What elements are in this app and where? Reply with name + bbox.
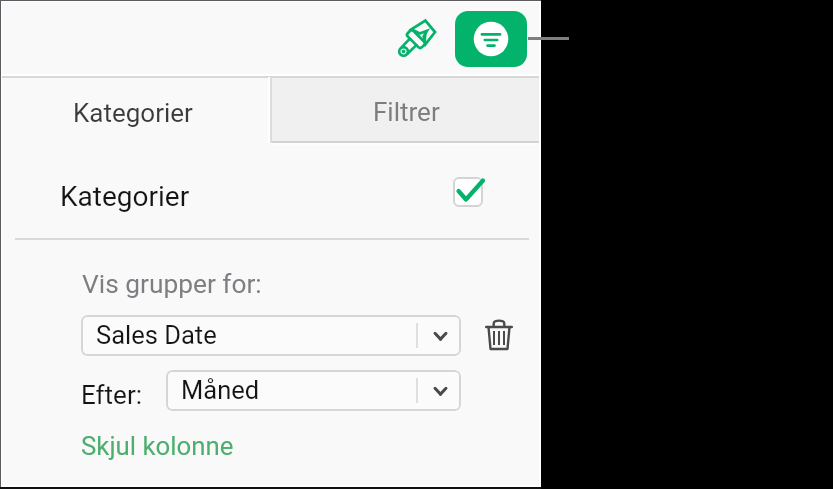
staticText: Vis grupper for: xyxy=(82,269,262,300)
staticText: Skjul kolonne xyxy=(81,431,234,461)
staticText: Filtrer xyxy=(373,97,440,127)
button[interactable]: Organize xyxy=(455,11,527,67)
staticText: Måned xyxy=(181,375,260,405)
button[interactable]: Kategorier, checked xyxy=(446,170,490,214)
button[interactable]: Kategorier xyxy=(0,143,541,238)
button[interactable]: Format xyxy=(393,14,441,62)
staticText: Sales Date xyxy=(96,320,217,350)
staticText: Kategorier xyxy=(60,180,190,213)
button[interactable]: Delete xyxy=(479,315,519,355)
staticText: Kategorier xyxy=(73,98,193,128)
button[interactable]: Skjul kolonne xyxy=(81,431,234,461)
button[interactable]: Kategorier xyxy=(0,78,270,143)
button[interactable]: Sales Date xyxy=(81,315,461,356)
staticText: Efter: xyxy=(81,380,142,410)
button[interactable]: Måned xyxy=(166,370,461,411)
button[interactable]: Filtrer xyxy=(271,78,541,141)
